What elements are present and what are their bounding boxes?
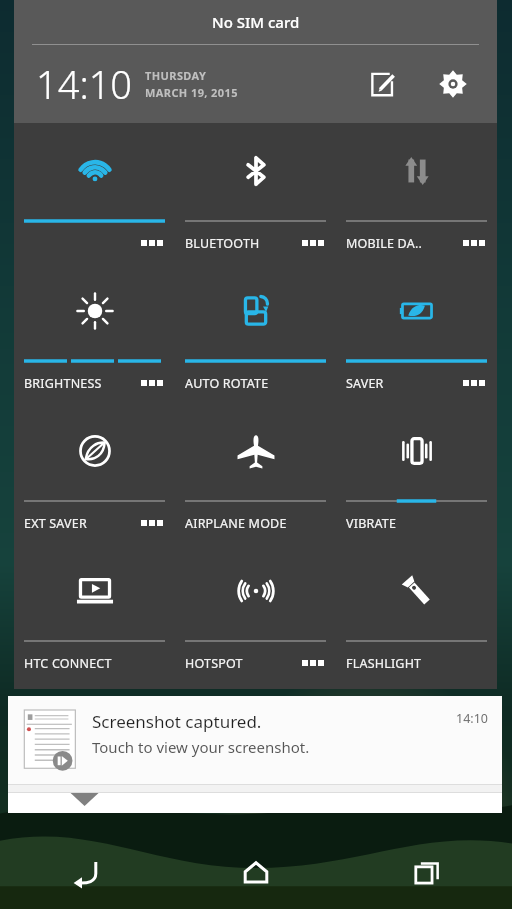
staticText: AIRPLANE MODE [185, 515, 287, 532]
button[interactable]: Screenshot captured. [8, 696, 502, 784]
staticText: EXT SAVER [24, 515, 87, 532]
staticText: THURSDAY [145, 68, 207, 83]
staticText: 14:10 [456, 710, 488, 727]
staticText: HOTSPOT [185, 655, 243, 672]
staticText: BLUETOOTH [185, 235, 260, 252]
button[interactable]: BLUETOOTH [175, 123, 336, 263]
button[interactable]: AUTO ROTATE [175, 263, 336, 403]
staticText: VIBRATE [346, 515, 397, 532]
staticText: 14:10 [36, 58, 133, 110]
button[interactable]: More options [461, 230, 487, 256]
staticText: SAVER [346, 375, 384, 392]
button[interactable]: AIRPLANE MODE [175, 403, 336, 543]
button[interactable]: More options [300, 230, 326, 256]
button[interactable]: HOTSPOT [175, 543, 336, 683]
staticText: HTC CONNECT [24, 655, 112, 672]
staticText: Touch to view your screenshot. [92, 737, 310, 757]
button[interactable]: More options [139, 230, 165, 256]
button[interactable]: More options [14, 123, 175, 263]
button[interactable]: More options [139, 370, 165, 396]
button[interactable]: HTC CONNECT [14, 543, 175, 683]
button[interactable]: More options [139, 510, 165, 536]
button[interactable]: MOBILE DA.. [336, 123, 497, 263]
button[interactable]: Edit [361, 62, 405, 106]
staticText: No SIM card [212, 12, 300, 32]
staticText: BRIGHTNESS [24, 375, 102, 392]
button[interactable]: BRIGHTNESS [14, 263, 175, 403]
button[interactable]: Settings [431, 62, 475, 106]
staticText: FLASHLIGHT [346, 655, 422, 672]
button[interactable]: EXT SAVER [14, 403, 175, 543]
staticText: AUTO ROTATE [185, 375, 269, 392]
button[interactable]: More options [461, 370, 487, 396]
button[interactable]: More options [300, 650, 326, 676]
button[interactable]: VIBRATE [336, 403, 497, 543]
button[interactable]: Home [170, 837, 341, 909]
staticText: Screenshot captured. [92, 710, 262, 733]
button[interactable]: SAVER [336, 263, 497, 403]
button[interactable]: FLASHLIGHT [336, 543, 497, 683]
button[interactable]: Back [0, 837, 170, 909]
staticText: MOBILE DA.. [346, 235, 422, 252]
button[interactable]: Recent apps [341, 837, 512, 909]
staticText: MARCH 19, 2015 [145, 85, 238, 100]
